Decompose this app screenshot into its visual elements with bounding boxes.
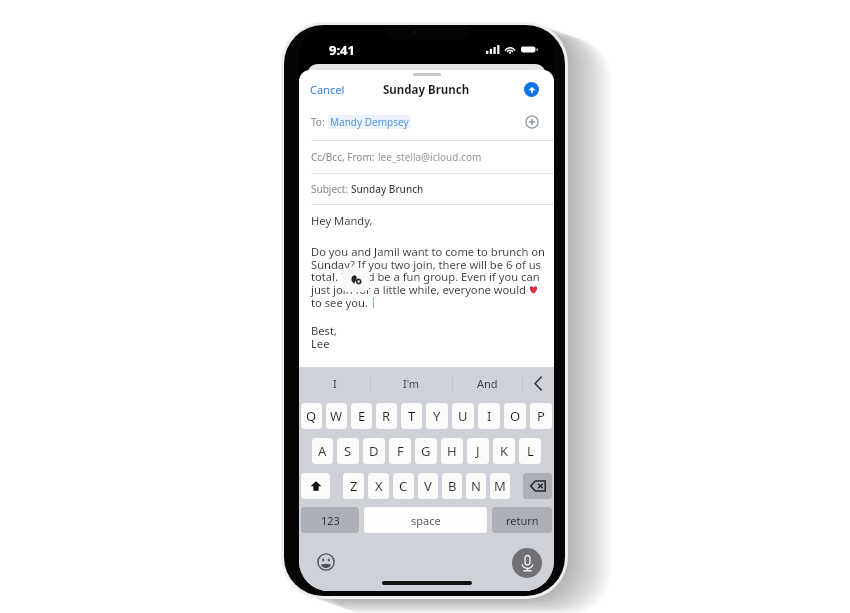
button[interactable]: return xyxy=(492,507,552,533)
button[interactable]: G xyxy=(415,438,437,464)
button[interactable]: X xyxy=(368,473,389,499)
button[interactable]: I xyxy=(478,403,500,429)
staticText: U xyxy=(458,407,468,425)
staticText: S xyxy=(344,442,352,460)
button[interactable]: Shift xyxy=(301,473,330,499)
button[interactable]: Backspace xyxy=(523,473,552,499)
button[interactable]: N xyxy=(466,473,486,499)
button[interactable]: Previous suggestion xyxy=(523,367,554,400)
button[interactable]: Dictation xyxy=(512,548,542,578)
staticText: Q xyxy=(306,407,317,425)
staticText: I xyxy=(487,407,492,425)
staticText: just join for a little while, everyone w… xyxy=(311,282,527,297)
staticText: T xyxy=(408,407,416,425)
button[interactable]: P xyxy=(530,403,552,429)
staticText: To: xyxy=(311,115,328,129)
staticText: G xyxy=(421,442,431,460)
staticText: And xyxy=(477,376,498,391)
button[interactable]: Cc/Bcc, From: xyxy=(299,141,554,173)
staticText: H xyxy=(447,442,457,460)
button[interactable]: Subject: xyxy=(299,174,554,204)
staticText: E xyxy=(358,407,366,425)
staticText: W xyxy=(330,407,343,425)
staticText: D xyxy=(369,442,379,460)
staticText: Best, xyxy=(311,323,337,338)
button[interactable]: Y xyxy=(426,403,448,429)
button[interactable]: Q xyxy=(301,403,322,429)
staticText: Z xyxy=(350,477,358,495)
staticText: Hey Mandy, xyxy=(311,213,373,228)
button[interactable]: T xyxy=(401,403,422,429)
staticText: Subject: xyxy=(311,182,351,196)
button[interactable]: I xyxy=(299,367,370,400)
button[interactable]: A xyxy=(312,438,333,464)
staticText: Mandy Dempsey xyxy=(330,115,409,129)
staticText: Cc/Bcc, From: xyxy=(311,150,378,164)
staticText: I'm xyxy=(403,376,420,391)
staticText: F xyxy=(397,442,404,460)
button[interactable]: D xyxy=(363,438,385,464)
button[interactable]: Cancel xyxy=(299,78,353,101)
button[interactable]: W xyxy=(326,403,347,429)
staticText: N xyxy=(471,477,481,495)
button[interactable]: Emoji xyxy=(317,553,335,571)
button[interactable]: F xyxy=(389,438,411,464)
staticText: 9:41 xyxy=(329,41,355,59)
staticText: Lee xyxy=(311,336,330,351)
staticText: X xyxy=(375,477,383,495)
staticText: Y xyxy=(433,407,441,425)
staticText: Sunday Brunch xyxy=(383,82,470,98)
staticText: total. Would be a fun group. Even if you… xyxy=(311,269,540,284)
button[interactable]: Add contact xyxy=(525,115,539,129)
staticText: R xyxy=(382,407,391,425)
button[interactable]: Z xyxy=(343,473,364,499)
button[interactable]: S xyxy=(337,438,359,464)
staticText: P xyxy=(537,407,545,425)
staticText: to see you. xyxy=(311,295,368,310)
button[interactable]: K xyxy=(493,438,515,464)
staticText: V xyxy=(424,477,432,495)
staticText: Sunday? If you two join, there will be 6… xyxy=(311,257,541,272)
button[interactable]: C xyxy=(393,473,414,499)
staticText: L xyxy=(527,442,534,460)
button[interactable]: J xyxy=(467,438,489,464)
button[interactable]: space xyxy=(364,507,487,533)
button[interactable]: Insert xyxy=(341,268,370,292)
button[interactable]: Mandy Dempsey xyxy=(328,115,411,129)
button[interactable]: Send xyxy=(524,82,539,97)
staticText: B xyxy=(448,477,457,495)
button[interactable]: O xyxy=(504,403,526,429)
button[interactable]: M xyxy=(490,473,510,499)
staticText: space xyxy=(411,513,441,528)
button[interactable]: 123 xyxy=(301,507,359,533)
button[interactable]: V xyxy=(418,473,438,499)
button[interactable]: H xyxy=(441,438,463,464)
staticText: Do you and Jamil want to come to brunch … xyxy=(311,244,545,259)
staticText: O xyxy=(510,407,521,425)
staticText: Sunday Brunch xyxy=(351,182,424,196)
staticText: J xyxy=(476,442,480,460)
button[interactable]: L xyxy=(519,438,541,464)
staticText: M xyxy=(494,477,506,495)
staticText: 123 xyxy=(321,513,340,528)
button[interactable]: E xyxy=(351,403,372,429)
button[interactable]: And xyxy=(453,367,522,400)
staticText: C xyxy=(399,477,408,495)
button[interactable]: U xyxy=(452,403,474,429)
staticText: I xyxy=(333,376,337,391)
staticText: A xyxy=(318,442,327,460)
button[interactable]: R xyxy=(376,403,397,429)
staticText: K xyxy=(500,442,509,460)
button[interactable]: I'm xyxy=(371,367,452,400)
staticText: lee_stella@icloud.com xyxy=(378,150,482,164)
staticText: Cancel xyxy=(310,82,345,97)
staticText: return xyxy=(506,513,539,528)
button[interactable]: B xyxy=(442,473,462,499)
